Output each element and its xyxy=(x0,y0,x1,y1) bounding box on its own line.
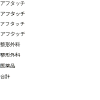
staticText: アフタッチ xyxy=(0,10,25,17)
staticText: アフタッチ xyxy=(0,30,25,38)
staticText: アフタッチ xyxy=(0,20,25,27)
staticText: 医薬品 xyxy=(0,61,15,69)
staticText: 整形外科 xyxy=(0,41,20,48)
staticText: 整形外科 xyxy=(0,51,20,58)
staticText: アフタッチ xyxy=(0,0,25,7)
staticText: 合計 xyxy=(0,72,10,80)
